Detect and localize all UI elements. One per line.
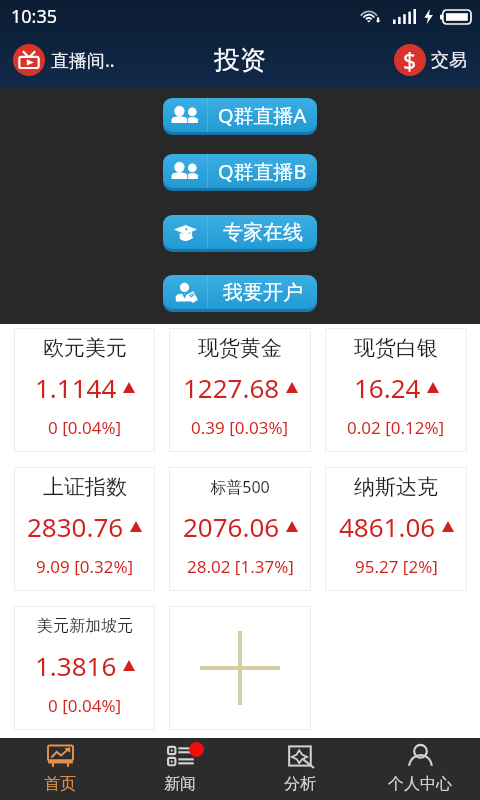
staticText: 欧元美元 (43, 335, 127, 361)
button[interactable]: 首页 (0, 738, 120, 800)
staticText: 0 [0.04%] (48, 694, 122, 717)
staticText: Q群直播B (218, 158, 307, 185)
staticText: 1.3816 (35, 648, 117, 683)
staticText: 上证指数 (43, 474, 127, 500)
staticText: 分析 (284, 774, 316, 794)
staticText: 直播间.. (51, 48, 115, 73)
staticText: 投资 (214, 44, 266, 77)
button[interactable]: 分析 (240, 738, 360, 800)
staticText: 1227.68 (183, 370, 280, 405)
staticText: 2076.06 (183, 509, 280, 544)
staticText: 交易 (431, 49, 467, 72)
button[interactable]: 个人中心 (360, 738, 480, 800)
staticText: 0.02 [0.12%] (347, 416, 445, 439)
staticText: 0 [0.04%] (48, 416, 122, 439)
staticText: Q群直播A (218, 102, 307, 129)
button[interactable]: 美元新加坡元 (14, 606, 155, 730)
button[interactable]: 新闻 (120, 738, 240, 800)
staticText: 0.39 [0.03%] (191, 416, 289, 439)
staticText: 10:35 (11, 4, 58, 29)
staticText: 1.1144 (35, 370, 117, 405)
button[interactable]: 专家在线 (163, 215, 317, 252)
staticText: 4861.06 (339, 509, 436, 544)
button[interactable]: 上证指数 (14, 467, 155, 591)
staticText: 现货白银 (354, 335, 438, 361)
button[interactable]: $ (394, 44, 467, 76)
staticText: 我要开户 (223, 280, 303, 305)
button[interactable]: 现货黄金 (169, 328, 311, 452)
button[interactable]: Add (169, 606, 311, 730)
staticText: 16.24 (354, 370, 421, 405)
button[interactable]: 直播间.. (13, 44, 115, 76)
button[interactable]: 标普500 (169, 467, 311, 591)
staticText: 新闻 (164, 774, 196, 794)
button[interactable]: 欧元美元 (14, 328, 155, 452)
staticText: 美元新加坡元 (37, 616, 133, 636)
staticText: 个人中心 (388, 774, 452, 794)
staticText: 专家在线 (223, 220, 303, 245)
staticText: 首页 (44, 774, 76, 794)
staticText: 95.27 [2%] (355, 555, 438, 578)
staticText: 28.02 [1.37%] (187, 555, 294, 578)
staticText: $ (403, 45, 417, 76)
button[interactable]: 我要开户 (163, 275, 317, 312)
staticText: 2830.76 (27, 509, 124, 544)
staticText: 9.09 [0.32%] (36, 555, 134, 578)
button[interactable]: Q群直播A (163, 98, 317, 135)
staticText: 现货黄金 (198, 335, 282, 361)
staticText: 标普500 (210, 476, 270, 498)
button[interactable]: 纳斯达克 (325, 467, 467, 591)
button[interactable]: Q群直播B (163, 154, 317, 191)
staticText: 纳斯达克 (354, 474, 438, 500)
button[interactable]: 现货白银 (325, 328, 467, 452)
